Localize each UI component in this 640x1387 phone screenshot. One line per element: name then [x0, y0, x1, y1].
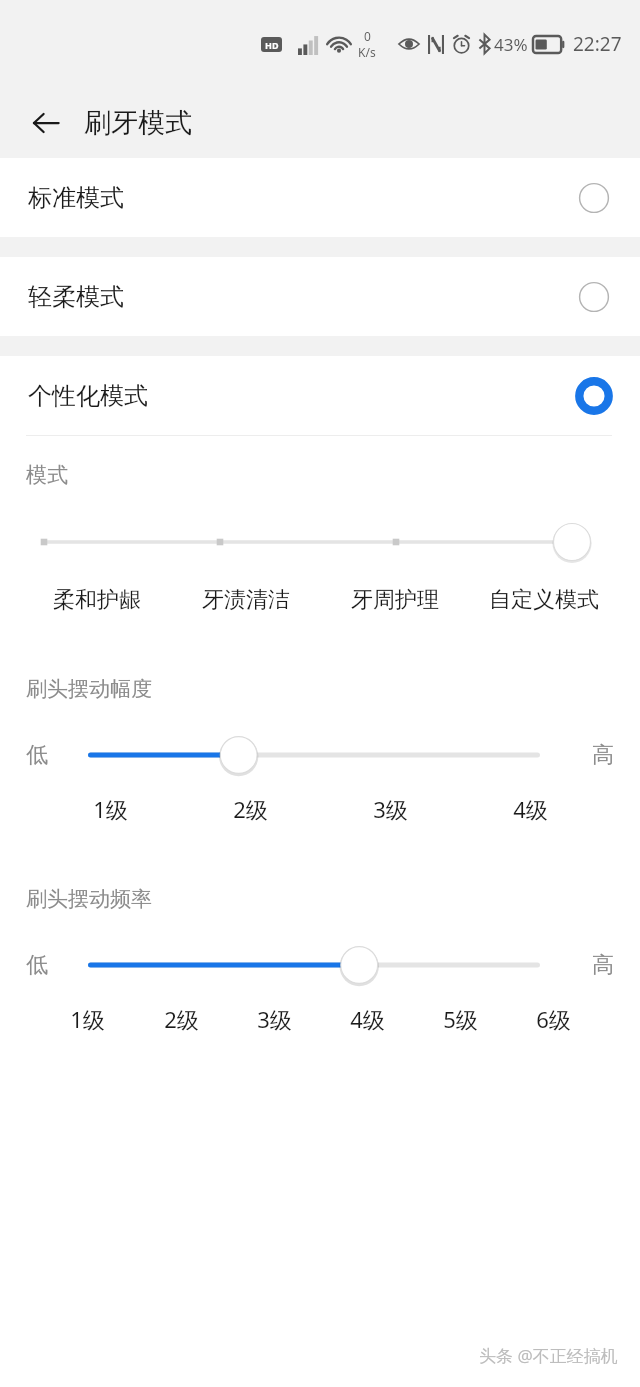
button[interactable]: 标准模式 — [0, 158, 640, 237]
staticText: 牙周护理 — [351, 586, 439, 614]
staticText: 模式 — [26, 462, 68, 488]
staticText: 高 — [592, 951, 614, 979]
staticText: 高 — [592, 741, 614, 769]
staticText: 1级 — [70, 1004, 105, 1034]
staticText: 刷牙模式 — [84, 106, 192, 140]
staticText: 个性化模式 — [28, 381, 578, 411]
staticText: 2级 — [233, 794, 268, 824]
staticText: 牙渍清洁 — [202, 586, 290, 614]
staticText: 1级 — [93, 794, 128, 824]
button[interactable]: 个性化模式 — [0, 356, 640, 435]
staticText: 2级 — [164, 1004, 199, 1034]
staticText: 5级 — [443, 1004, 478, 1034]
staticText: 3级 — [373, 794, 408, 824]
staticText: K/s — [358, 44, 376, 60]
staticText: 刷头摆动幅度 — [26, 676, 152, 702]
staticText: 3级 — [257, 1004, 292, 1034]
staticText: 自定义模式 — [489, 586, 599, 614]
staticText: 6级 — [536, 1004, 571, 1034]
staticText: 4级 — [513, 794, 548, 824]
staticText: 柔和护龈 — [53, 586, 141, 614]
staticText: HD — [265, 39, 279, 51]
staticText: 4级 — [350, 1004, 385, 1034]
button[interactable]: Back — [20, 97, 72, 149]
staticText: 标准模式 — [28, 183, 578, 213]
staticText: 43% — [494, 33, 528, 56]
staticText: 22:27 — [573, 31, 622, 57]
staticText: 低 — [26, 741, 48, 769]
staticText: 轻柔模式 — [28, 282, 578, 312]
staticText: 头条 @不正经搞机 — [479, 1344, 618, 1367]
staticText: 0 — [364, 28, 371, 44]
button[interactable]: 轻柔模式 — [0, 257, 640, 336]
staticText: 刷头摆动频率 — [26, 886, 152, 912]
staticText: 低 — [26, 951, 48, 979]
